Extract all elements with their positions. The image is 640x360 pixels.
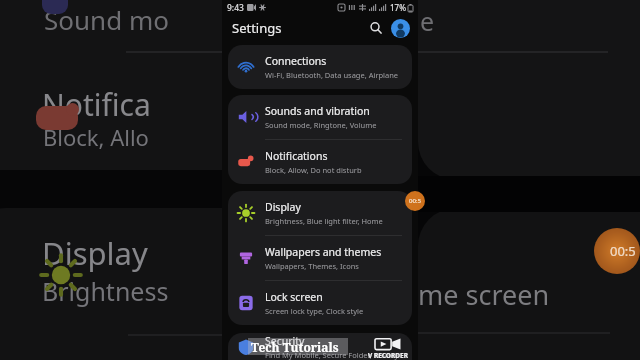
button[interactable]: Account — [391, 19, 410, 38]
staticText: Lock screen — [265, 290, 323, 304]
staticText: Wi-Fi, Bluetooth, Data usage, Airplane m… — [265, 70, 402, 80]
staticText: Notifications — [265, 149, 328, 163]
staticText: Sounds and vibration — [265, 104, 370, 118]
staticText: Display — [265, 200, 301, 214]
staticText: Wallpapers, Themes, Icons — [265, 261, 359, 271]
button[interactable]: Wallpapers and themes — [228, 236, 412, 280]
button[interactable]: V Recorder — [368, 337, 408, 360]
staticText: 00:5 — [409, 197, 421, 205]
button[interactable]: Lock screen — [228, 281, 412, 325]
staticText: Sound mo — [44, 2, 169, 37]
button[interactable]: Search — [366, 18, 386, 38]
staticText: 00:5 — [610, 242, 636, 260]
staticText: me screen — [418, 276, 550, 313]
staticText: Display — [42, 232, 148, 274]
button[interactable]: Connections — [228, 45, 412, 89]
staticText: Brightness, Blue light filter, Home scre… — [265, 216, 402, 226]
button[interactable]: Sounds and vibration — [228, 95, 412, 139]
button[interactable]: Recording timer — [594, 228, 640, 274]
staticText: Brightness — [42, 274, 169, 308]
button[interactable]: Recording timer — [405, 191, 425, 211]
staticText: Tech Tutorials — [251, 339, 339, 355]
staticText: V RECORDER — [368, 351, 408, 360]
staticText: Security — [265, 334, 305, 348]
staticText: e — [420, 4, 435, 38]
staticText: Find My Mobile, Secure Folder, Privacy — [265, 350, 399, 360]
staticText: Wallpapers and themes — [265, 245, 382, 259]
staticText: 17% — [390, 2, 406, 13]
staticText: Screen lock type, Clock style — [265, 306, 364, 316]
staticText: 9:43 — [227, 2, 244, 14]
button[interactable]: Display — [228, 191, 412, 235]
staticText: Block, Allow, Do not disturb — [265, 165, 362, 175]
staticText: Connections — [265, 54, 327, 68]
staticText: Settings — [232, 19, 282, 37]
staticText: Notifica — [42, 84, 151, 125]
staticText: Sound mode, Ringtone, Volume — [265, 120, 377, 130]
button[interactable]: Notifications — [228, 140, 412, 184]
staticText: Block, Allo — [43, 122, 149, 152]
button[interactable]: Security — [228, 333, 412, 360]
